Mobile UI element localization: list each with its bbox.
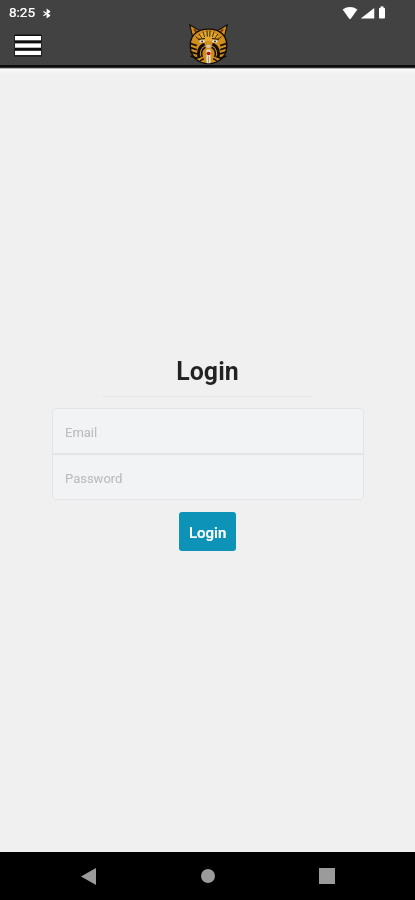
staticText: Login: [189, 524, 227, 542]
staticText: Password: [65, 471, 123, 486]
button[interactable]: Open navigation menu: [11, 30, 44, 64]
staticText: Email: [65, 425, 98, 440]
staticText: Login: [176, 357, 239, 386]
staticText: 8:25: [9, 4, 36, 20]
button[interactable]: Recent apps: [303, 852, 351, 900]
button[interactable]: Password: [52, 454, 364, 500]
button[interactable]: Back: [64, 852, 112, 900]
button[interactable]: Login: [179, 512, 236, 551]
button[interactable]: Email: [52, 408, 364, 454]
button[interactable]: Home: [184, 852, 232, 900]
